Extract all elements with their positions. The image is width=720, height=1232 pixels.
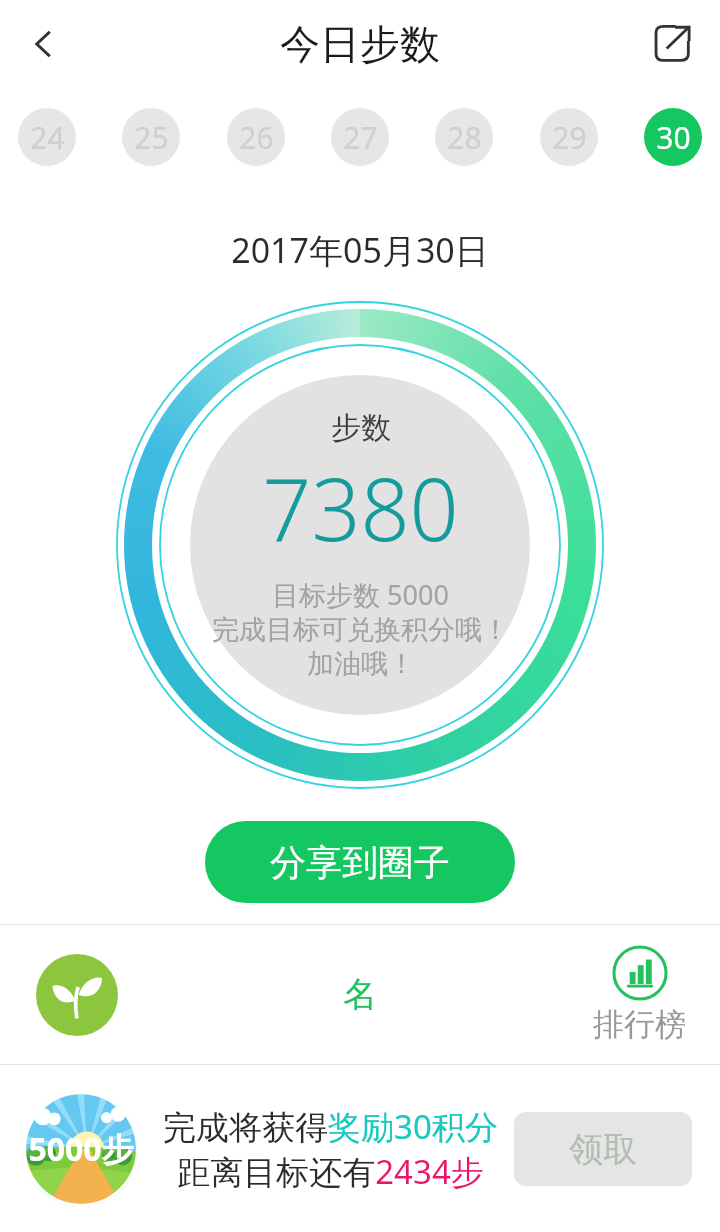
button[interactable]: 分享到圈子 xyxy=(205,821,515,903)
staticText: 完成目标可兑换积分哦！ xyxy=(212,613,509,647)
staticText: 名 xyxy=(343,973,377,1016)
button[interactable]: 26 xyxy=(227,108,285,166)
staticText: 25 xyxy=(134,117,169,158)
button[interactable]: 29 xyxy=(540,108,598,166)
button[interactable]: 名 xyxy=(343,973,377,1016)
staticText: 今日步数 xyxy=(280,19,440,69)
staticText: 分享到圈子 xyxy=(270,840,450,885)
button[interactable]: 24 xyxy=(18,108,76,166)
staticText: 加油哦！ xyxy=(307,647,415,681)
button[interactable]: Sprout xyxy=(36,954,118,1036)
staticText: 27 xyxy=(343,117,378,158)
staticText: 28 xyxy=(447,117,482,158)
button[interactable]: 30 xyxy=(644,108,702,166)
button[interactable]: 27 xyxy=(331,108,389,166)
staticText: 30 xyxy=(656,117,691,158)
staticText: 目标步数 5000 xyxy=(272,576,449,613)
staticText: 7380 xyxy=(262,449,459,566)
staticText: 领取 xyxy=(569,1128,637,1171)
staticText: 2017年05月30日 xyxy=(231,227,489,273)
button[interactable]: Share xyxy=(636,8,708,80)
staticText: 步数 xyxy=(331,409,391,447)
staticText: 29 xyxy=(552,117,587,158)
button[interactable]: 25 xyxy=(122,108,180,166)
staticText: 26 xyxy=(239,117,274,158)
button[interactable]: 28 xyxy=(435,108,493,166)
staticText: 5000步 xyxy=(28,1127,134,1171)
staticText: 距离目标还有2434步 xyxy=(177,1149,484,1194)
button[interactable]: 排行榜 xyxy=(593,945,686,1044)
button[interactable]: 领取 xyxy=(514,1112,692,1186)
staticText: 24 xyxy=(30,117,65,158)
staticText: 完成将获得奖励30积分 xyxy=(163,1104,498,1149)
button[interactable]: Back xyxy=(8,8,80,80)
staticText: 排行榜 xyxy=(593,1005,686,1044)
